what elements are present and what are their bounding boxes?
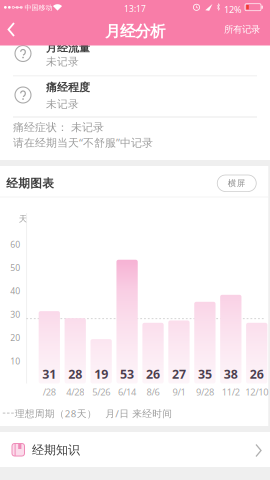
staticText: 8/6 xyxy=(146,385,159,398)
staticText: 26 xyxy=(146,365,160,382)
staticText: 38 xyxy=(224,365,238,382)
staticText: 9/28 xyxy=(196,385,214,398)
staticText: 中国移动 xyxy=(24,3,52,12)
staticText: 所有记录 xyxy=(224,23,260,35)
staticText: 痛经程度 xyxy=(46,80,90,94)
staticText: 请在经期当天“不舒服”中记录 xyxy=(13,135,153,150)
staticText: 20 xyxy=(10,332,20,344)
staticText: 理想周期（28天） xyxy=(15,407,97,420)
staticText: 53 xyxy=(120,365,134,382)
staticText: 12% xyxy=(224,3,242,15)
staticText: 50 xyxy=(10,262,20,274)
button[interactable]: 横屏 xyxy=(217,175,256,191)
staticText: 横屏 xyxy=(228,178,246,189)
staticText: /28 xyxy=(43,385,56,398)
staticText: 月/日 来经时间 xyxy=(105,407,172,420)
staticText: 28 xyxy=(68,365,82,382)
button[interactable]: 所有记录 xyxy=(0,0,260,35)
staticText: 6/14 xyxy=(118,385,136,398)
staticText: 未记录 xyxy=(46,55,79,68)
staticText: 30 xyxy=(10,308,20,320)
button[interactable]: Back xyxy=(0,0,20,45)
staticText: 月经流量 xyxy=(46,41,90,55)
staticText: 月经分析 xyxy=(105,21,165,41)
staticText: 痛经症状： 未记录 xyxy=(13,120,104,134)
staticText: 40 xyxy=(10,285,20,297)
staticText: 经期知识 xyxy=(32,442,80,458)
staticText: 经期图表 xyxy=(6,176,54,191)
staticText: 4/28 xyxy=(66,385,84,398)
staticText: 27 xyxy=(172,365,186,382)
staticText: 11/2 xyxy=(222,385,240,398)
staticText: 9/1 xyxy=(172,385,185,398)
staticText: 19 xyxy=(94,365,108,382)
staticText: 天 xyxy=(19,213,28,224)
staticText: 10 xyxy=(10,355,20,367)
staticText: 5/26 xyxy=(92,385,110,398)
staticText: 31 xyxy=(42,365,56,382)
staticText: 未记录 xyxy=(46,97,79,111)
staticText: 26 xyxy=(250,365,264,382)
staticText: 35 xyxy=(198,365,212,382)
button[interactable]: 经期知识 xyxy=(0,432,270,467)
button[interactable]: 月经流量 xyxy=(0,36,270,76)
button[interactable]: 痛经程度 xyxy=(0,76,270,116)
staticText: 60 xyxy=(10,238,20,250)
staticText: 12/10 xyxy=(245,385,268,398)
staticText: 13:17 xyxy=(124,3,146,14)
